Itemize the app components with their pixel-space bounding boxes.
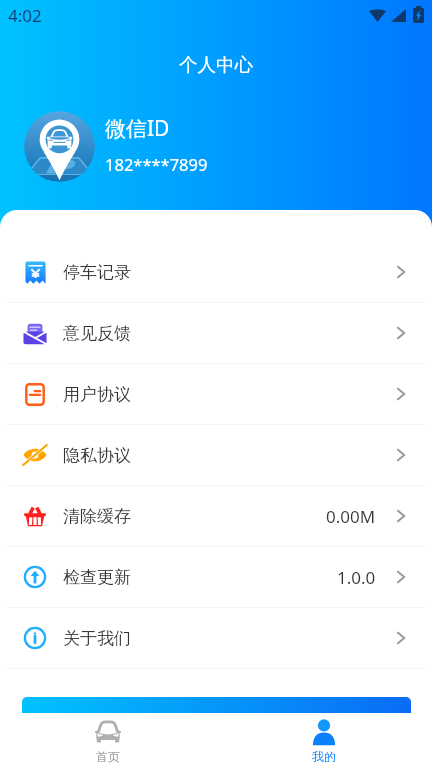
staticText: 182****7899 xyxy=(105,153,208,175)
button[interactable]: 检查更新 xyxy=(0,547,432,607)
button[interactable]: 隐私协议 xyxy=(0,425,432,485)
button[interactable]: 停车记录 xyxy=(0,242,432,302)
button[interactable]: 关于我们 xyxy=(0,608,432,668)
staticText: 用户协议 xyxy=(63,384,131,405)
staticText: 微信ID xyxy=(105,114,170,143)
staticText: 我的 xyxy=(312,749,336,764)
staticText: 意见反馈 xyxy=(63,323,131,344)
staticText: 隐私协议 xyxy=(63,445,131,466)
staticText: 关于我们 xyxy=(63,628,131,649)
button[interactable]: 我的 xyxy=(216,713,432,768)
staticText: 清除缓存 xyxy=(63,506,131,527)
button[interactable]: 清除缓存 xyxy=(0,486,432,546)
staticText: 检查更新 xyxy=(63,567,131,588)
button[interactable]: 首页 xyxy=(0,713,216,768)
staticText: 停车记录 xyxy=(63,262,131,283)
button[interactable]: 用户协议 xyxy=(0,364,432,424)
staticText: 1.0.0 xyxy=(337,566,376,589)
staticText: 个人中心 xyxy=(0,53,432,76)
staticText: 首页 xyxy=(96,749,120,764)
staticText: 0.00M xyxy=(326,505,376,528)
button[interactable] xyxy=(22,697,411,741)
staticText: 4:02 xyxy=(8,4,42,27)
button[interactable]: 意见反馈 xyxy=(0,303,432,363)
